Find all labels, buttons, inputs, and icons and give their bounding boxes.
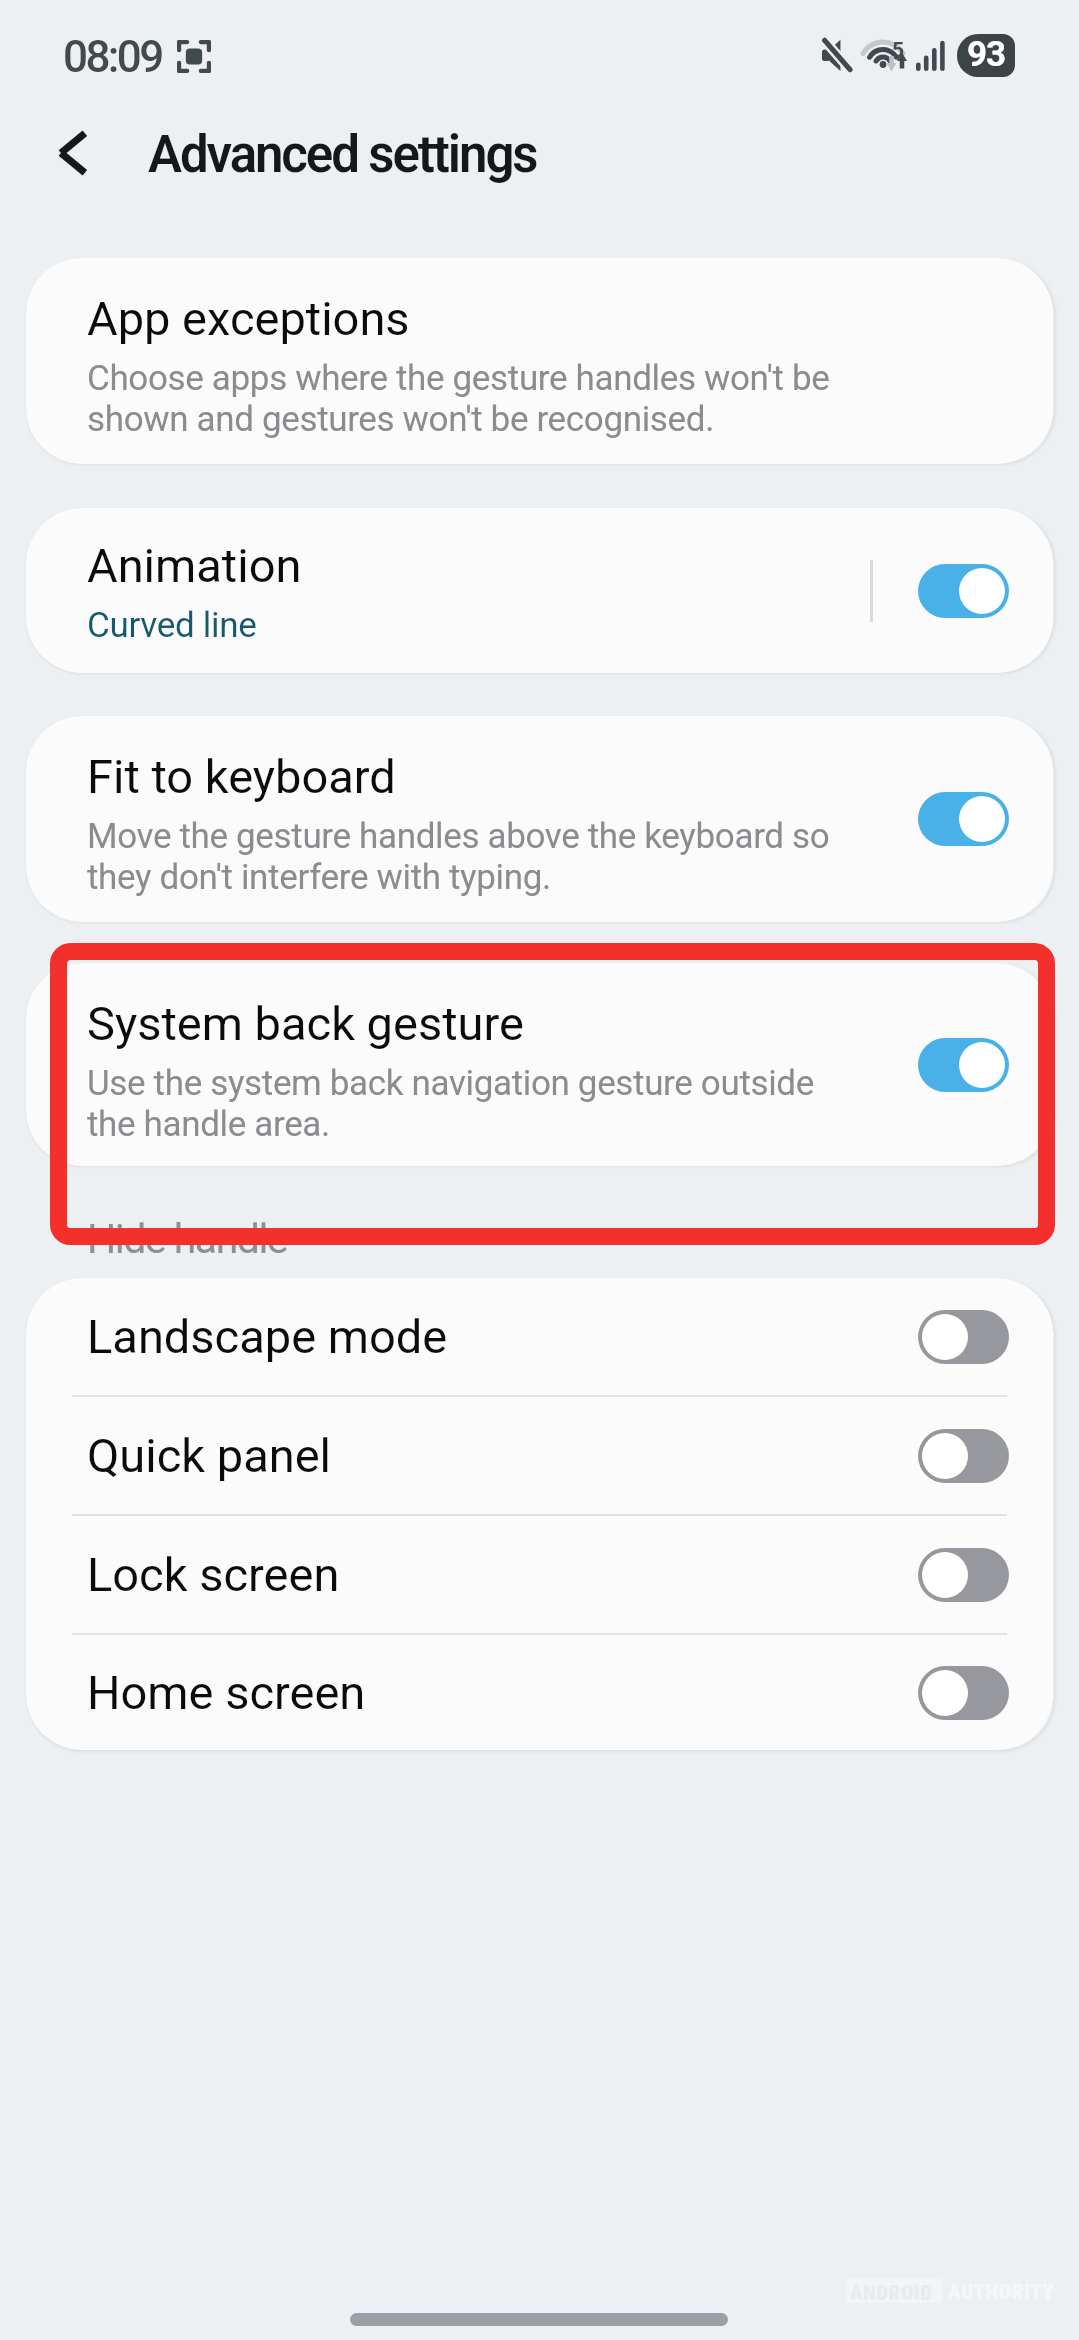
- staticText: Advanced settings: [148, 125, 537, 185]
- staticText: Lock screen: [87, 1547, 873, 1602]
- staticText: Use the system back navigation gesture o…: [87, 1063, 814, 1145]
- staticText: Move the gesture handles above the keybo…: [87, 816, 830, 898]
- staticText: Fit to keyboard: [87, 749, 396, 804]
- staticText: Landscape mode: [87, 1309, 873, 1364]
- staticText: Curved line: [87, 605, 257, 646]
- button[interactable]: Fit to keyboard toggle: [873, 716, 1053, 922]
- button[interactable]: Quick panel toggle: [873, 1397, 1053, 1514]
- staticText: Animation: [87, 538, 302, 593]
- staticText: ANDROID: [850, 2281, 933, 2306]
- staticText: Choose apps where the gesture handles wo…: [87, 358, 830, 440]
- button[interactable]: Landscape mode toggle: [873, 1278, 1053, 1395]
- button[interactable]: App exceptions: [26, 258, 1053, 464]
- staticText: Home screen: [87, 1665, 873, 1720]
- button[interactable]: Lock screen toggle: [873, 1516, 1053, 1633]
- button[interactable]: Landscape mode: [26, 1278, 1053, 1395]
- staticText: Quick panel: [87, 1428, 873, 1483]
- button[interactable]: Animation toggle: [873, 508, 1053, 673]
- staticText: Hide handle: [87, 1215, 288, 1263]
- staticText: 93: [967, 34, 1006, 75]
- button[interactable]: Animation: [26, 508, 870, 673]
- button[interactable]: Quick panel: [26, 1397, 1053, 1514]
- button[interactable]: Fit to keyboard: [26, 716, 873, 922]
- staticText: 5: [892, 38, 905, 63]
- button[interactable]: Home screen: [26, 1635, 1053, 1750]
- button[interactable]: System back gesture: [26, 963, 873, 1166]
- button[interactable]: Home screen toggle: [873, 1635, 1053, 1750]
- button[interactable]: Lock screen: [26, 1516, 1053, 1633]
- staticText: 08:09: [63, 31, 162, 83]
- staticText: System back gesture: [87, 996, 524, 1051]
- staticText: AUTHORITY: [948, 2280, 1055, 2305]
- button[interactable]: Back: [29, 110, 115, 196]
- staticText: App exceptions: [87, 291, 410, 346]
- button[interactable]: System back gesture toggle: [873, 963, 1053, 1166]
